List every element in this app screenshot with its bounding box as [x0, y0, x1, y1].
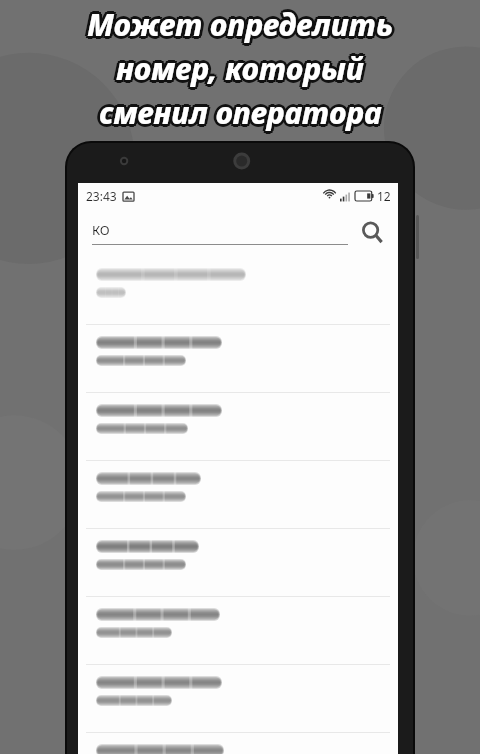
- staticText: Может определить: [87, 7, 393, 48]
- staticText: сменил оператора: [97, 90, 380, 131]
- staticText: номер, который: [114, 46, 362, 87]
- staticText: номер, который: [116, 48, 364, 89]
- staticText: Может определить: [87, 1, 393, 42]
- staticText: сменил оператора: [99, 94, 382, 135]
- staticText: Может определить: [87, 2, 393, 43]
- button[interactable]: [78, 529, 398, 597]
- staticText: Может определить: [84, 4, 390, 45]
- staticText: номер, который: [119, 48, 367, 89]
- staticText: Может определить: [89, 6, 395, 47]
- staticText: Может определить: [87, 6, 393, 47]
- staticText: Может определить: [89, 2, 395, 43]
- button[interactable]: [78, 597, 398, 665]
- staticText: Может определить: [89, 4, 395, 45]
- staticText: сменил оператора: [97, 94, 380, 135]
- button[interactable]: [78, 257, 398, 325]
- staticText: номер, который: [116, 51, 364, 92]
- staticText: сменил оператора: [101, 90, 384, 131]
- staticText: сменил оператора: [99, 92, 382, 133]
- staticText: Может определить: [87, 4, 393, 45]
- button[interactable]: [78, 461, 398, 529]
- staticText: номер, который: [116, 45, 364, 86]
- staticText: Может определить: [85, 6, 391, 47]
- staticText: Может определить: [90, 4, 396, 45]
- staticText: Может определить: [85, 4, 391, 45]
- staticText: сменил оператора: [99, 95, 382, 136]
- button[interactable]: [78, 325, 398, 393]
- staticText: 23:43: [86, 188, 117, 204]
- staticText: номер, который: [118, 50, 366, 91]
- staticText: сменил оператора: [97, 92, 380, 133]
- staticText: номер, который: [118, 46, 366, 87]
- staticText: сменил оператора: [99, 89, 382, 130]
- button[interactable]: Search: [358, 218, 388, 248]
- staticText: номер, который: [116, 50, 364, 91]
- staticText: номер, который: [114, 50, 362, 91]
- staticText: сменил оператора: [101, 92, 384, 133]
- staticText: номер, который: [113, 48, 361, 89]
- staticText: номер, который: [116, 46, 364, 87]
- staticText: номер, который: [114, 48, 362, 89]
- button[interactable]: [78, 393, 398, 461]
- staticText: сменил оператора: [96, 92, 379, 133]
- staticText: сменил оператора: [99, 90, 382, 131]
- button[interactable]: [78, 733, 398, 754]
- staticText: номер, который: [118, 48, 366, 89]
- staticText: сменил оператора: [101, 94, 384, 135]
- staticText: КО: [92, 221, 110, 239]
- staticText: сменил оператора: [102, 92, 385, 133]
- button[interactable]: [78, 665, 398, 733]
- staticText: 12: [377, 188, 391, 204]
- staticText: Может определить: [85, 2, 391, 43]
- button[interactable]: КО: [92, 221, 348, 245]
